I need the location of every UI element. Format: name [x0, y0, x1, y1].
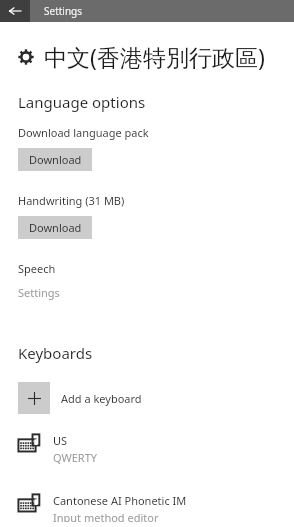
staticText: Cantonese AI Phonetic IM: [53, 493, 187, 508]
staticText: Settings: [18, 285, 60, 300]
button[interactable]: Download: [18, 216, 92, 239]
staticText: Input method editor: [53, 510, 159, 522]
staticText: QWERTY: [53, 450, 98, 465]
staticText: Add a keyboard: [61, 391, 142, 406]
staticText: Speech: [18, 261, 56, 276]
button[interactable]: Download: [18, 148, 92, 171]
staticText: Language options: [18, 92, 146, 112]
staticText: US: [53, 433, 68, 448]
staticText: Download language pack: [18, 125, 149, 140]
staticText: Download: [29, 152, 82, 167]
staticText: Download: [29, 220, 82, 235]
button[interactable]: Cantonese AI Phonetic IM: [0, 488, 294, 527]
staticText: Handwriting (31 MB): [18, 193, 125, 208]
button[interactable]: Add a keyboard: [0, 382, 294, 414]
staticText: 中文(香港特別行政區): [44, 41, 265, 72]
button[interactable]: Back: [0, 0, 30, 22]
staticText: Keyboards: [18, 343, 93, 363]
button[interactable]: US: [0, 428, 294, 470]
staticText: Settings: [44, 4, 83, 18]
button[interactable]: Settings: [0, 284, 66, 301]
